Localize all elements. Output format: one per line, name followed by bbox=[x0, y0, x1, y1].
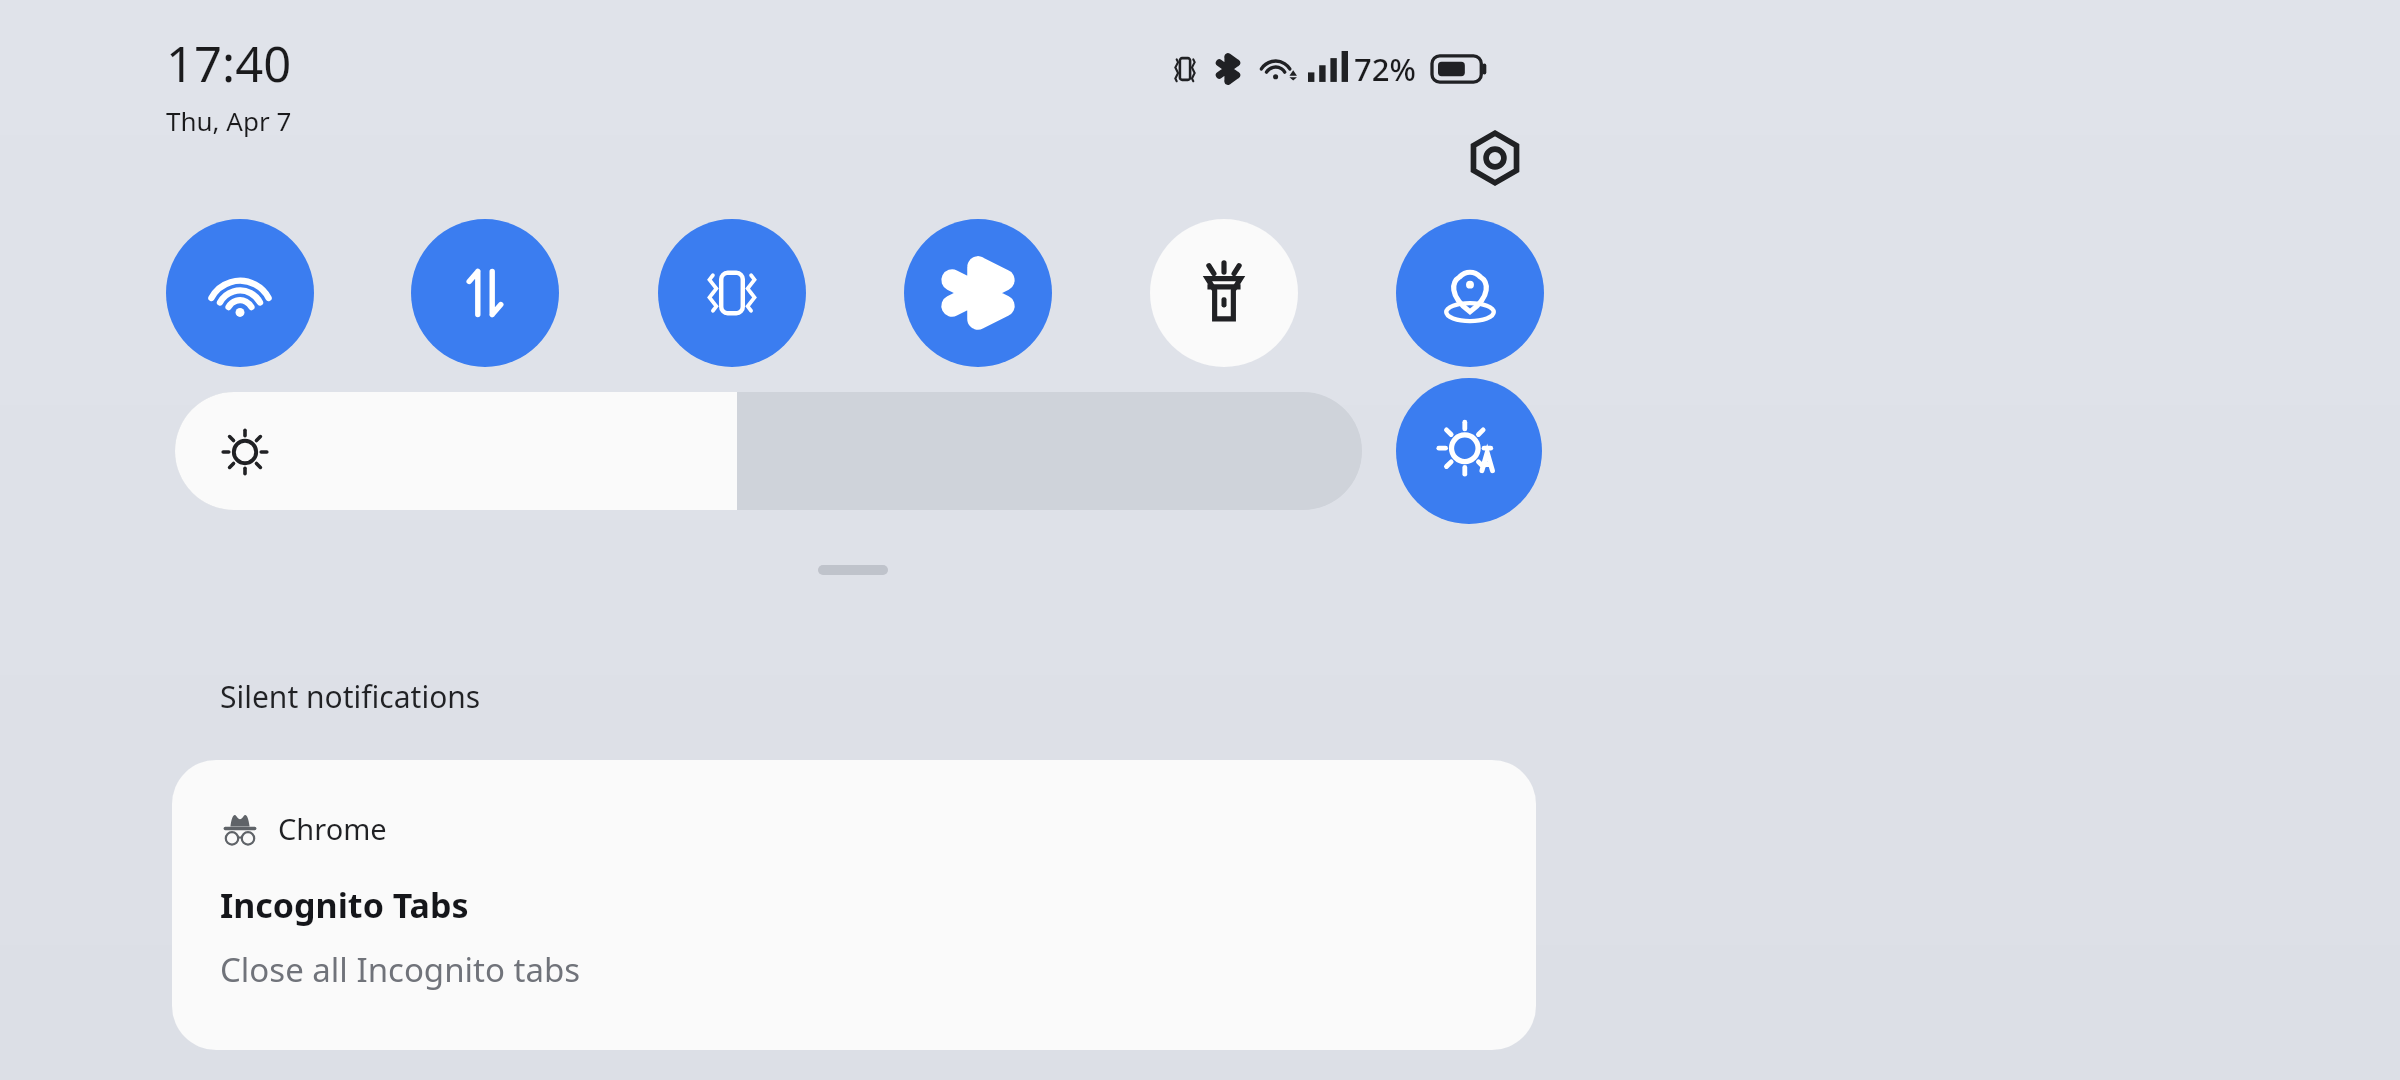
button[interactable]: Auto brightness bbox=[1396, 378, 1542, 524]
staticText: Silent notifications bbox=[220, 676, 481, 717]
button[interactable]: Settings bbox=[1455, 118, 1535, 198]
staticText: 72% bbox=[1354, 48, 1416, 90]
button[interactable]: Vibrate bbox=[658, 219, 806, 367]
button[interactable]: Bluetooth bbox=[904, 219, 1052, 367]
button[interactable]: Flashlight bbox=[1150, 219, 1298, 367]
staticText: Incognito Tabs bbox=[220, 882, 469, 928]
button[interactable]: Location bbox=[1396, 219, 1544, 367]
button[interactable]: Expand bbox=[818, 565, 888, 575]
staticText: Thu, Apr 7 bbox=[166, 103, 292, 138]
staticText: Close all Incognito tabs bbox=[220, 947, 581, 992]
staticText: 17:40 bbox=[166, 30, 292, 97]
button[interactable]: Brightness bbox=[175, 392, 1362, 510]
button[interactable]: Wi-Fi bbox=[166, 219, 314, 367]
staticText: Chrome bbox=[278, 809, 387, 848]
button[interactable]: Chrome bbox=[172, 760, 1536, 1050]
button[interactable]: Mobile data bbox=[411, 219, 559, 367]
